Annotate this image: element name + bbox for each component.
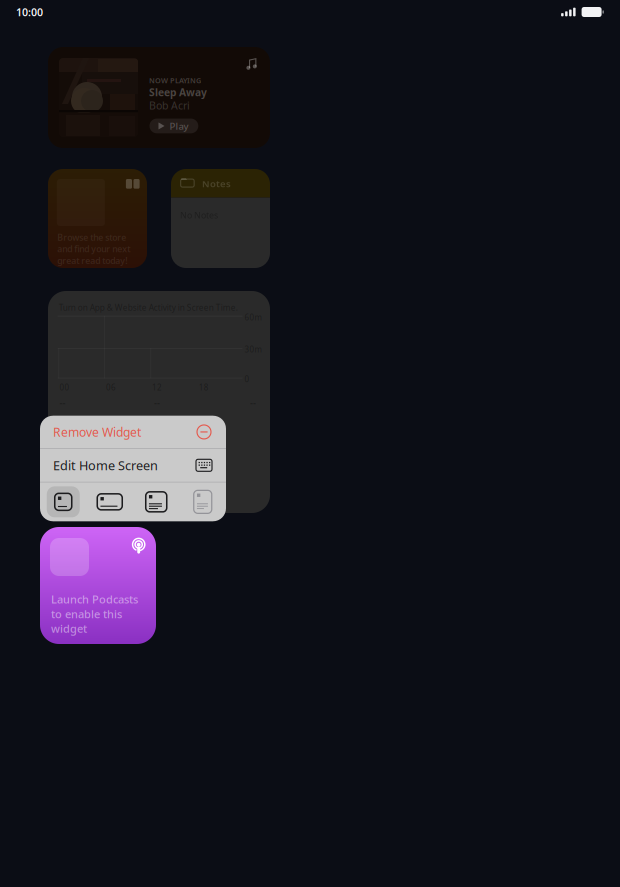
button[interactable]: Books widget [48, 169, 147, 268]
staticText: 18 [199, 382, 209, 393]
staticText: 12 [152, 382, 162, 393]
staticText: Launch Podcasts to enable this widget [51, 592, 138, 636]
button[interactable]: Remove Widget [40, 416, 226, 448]
button[interactable]: Medium widget size [86, 482, 133, 521]
staticText: Turn on App & Website Activity in Screen… [59, 302, 238, 313]
staticText: 00 [59, 382, 69, 393]
button[interactable]: Now Playing widget [48, 47, 270, 148]
staticText: Remove Widget [53, 424, 141, 440]
button[interactable]: Large widget size [133, 482, 179, 521]
staticText: 06 [106, 382, 116, 393]
button[interactable]: Small widget size [40, 482, 86, 521]
staticText: 60m [244, 312, 261, 323]
button[interactable]: Notes widget [171, 169, 270, 268]
staticText: Notes [202, 177, 231, 190]
button[interactable]: Podcasts widget [40, 527, 156, 644]
button[interactable]: Edit Home Screen [40, 449, 226, 482]
staticText: Play [169, 120, 188, 132]
staticText: 10:00 [16, 5, 43, 19]
button[interactable]: Screen Time widget [48, 291, 270, 513]
staticText: Sleep Away [149, 85, 207, 99]
staticText: No Notes [180, 209, 218, 221]
staticText: Bob Acri [149, 98, 190, 112]
staticText: Edit Home Screen [53, 457, 158, 474]
staticText: 30m [244, 344, 261, 355]
staticText: 0 [244, 374, 249, 384]
button[interactable]: Extra large widget size [179, 482, 226, 521]
staticText: Browse the store and find your next grea… [57, 231, 130, 266]
staticText: NOW PLAYING [149, 75, 201, 85]
